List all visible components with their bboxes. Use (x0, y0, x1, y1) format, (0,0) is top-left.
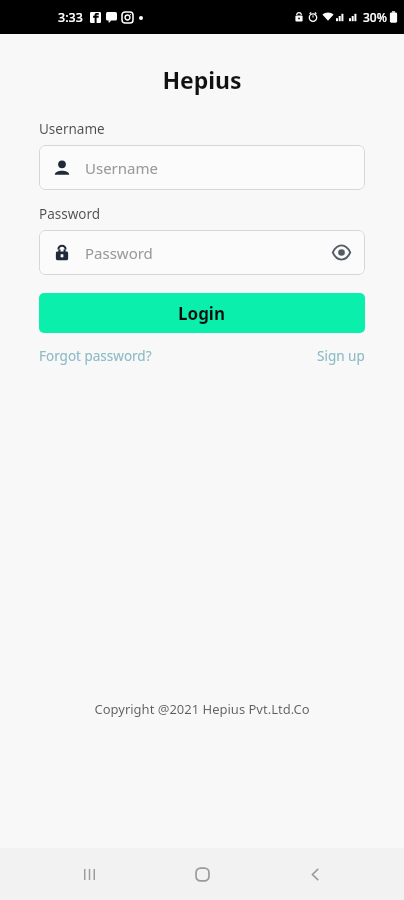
staticText: 30% (363, 9, 387, 25)
button[interactable]: Sign up (317, 347, 365, 365)
staticText: Sign up (317, 347, 365, 365)
button[interactable]: Forgot password? (39, 347, 152, 365)
staticText: Password (85, 243, 332, 263)
staticText: 3:33 (58, 9, 83, 26)
staticText: Login (178, 302, 226, 325)
button[interactable]: Password (39, 230, 365, 275)
button[interactable]: Home (178, 850, 226, 898)
button[interactable]: Username (39, 145, 365, 190)
button[interactable]: Back (291, 850, 339, 898)
staticText: Password (39, 205, 101, 223)
staticText: Username (85, 158, 351, 178)
other: Username (53, 159, 71, 177)
button[interactable]: Recent apps (65, 850, 113, 898)
staticText: Hepius (0, 64, 404, 95)
other: Password (53, 244, 71, 262)
staticText: Forgot password? (39, 347, 152, 365)
staticText: Username (39, 120, 105, 138)
button[interactable]: Login (39, 293, 365, 333)
other: Show password (332, 243, 351, 262)
staticText: Copyright @2021 Hepius Pvt.Ltd.Co (0, 700, 404, 718)
